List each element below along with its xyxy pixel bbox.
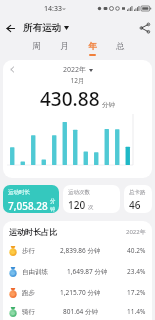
button[interactable]: 所有运动 bbox=[23, 22, 69, 34]
button[interactable]: 运动时长 bbox=[3, 185, 59, 213]
button[interactable]: 运动次数 bbox=[63, 185, 120, 213]
staticText: 46 bbox=[129, 198, 141, 212]
staticText: 120 bbox=[68, 198, 86, 212]
staticText: 11.4% bbox=[127, 307, 146, 316]
button[interactable]: 总 bbox=[106, 41, 134, 56]
button[interactable]: 自由训练 bbox=[3, 261, 152, 282]
staticText: 运动时长 bbox=[8, 189, 30, 196]
staticText: 2,839.86 分钟 bbox=[60, 246, 101, 255]
button[interactable]: Back bbox=[0, 18, 20, 38]
staticText: 骑行 bbox=[22, 308, 35, 316]
staticText: 所有运动 bbox=[23, 22, 61, 34]
staticText: 1,215.70 分钟 bbox=[60, 288, 101, 297]
staticText: 7,058.28 bbox=[8, 199, 48, 213]
staticText: 801.64 分钟 bbox=[63, 307, 99, 316]
staticText: 跑步 bbox=[22, 289, 35, 297]
staticText: 周 bbox=[32, 41, 41, 52]
button[interactable]: 年 bbox=[78, 41, 106, 56]
staticText: 2022年 bbox=[63, 65, 87, 75]
button[interactable]: Previous bbox=[7, 64, 18, 75]
staticText: 月 bbox=[60, 41, 69, 52]
button[interactable]: Share bbox=[135, 18, 155, 38]
staticText: 430.88 bbox=[40, 86, 100, 112]
staticText: 17.2% bbox=[127, 288, 146, 297]
staticText: 次 bbox=[88, 204, 94, 211]
staticText: 运动时长占比 bbox=[9, 227, 57, 237]
button[interactable]: 周 bbox=[22, 41, 50, 56]
button[interactable]: 2022年 bbox=[63, 65, 93, 75]
button[interactable]: 步行 bbox=[3, 240, 152, 261]
button[interactable]: 跑步 bbox=[3, 282, 152, 303]
staticText: 2022年 bbox=[126, 228, 146, 236]
button[interactable]: 月 bbox=[50, 41, 78, 56]
staticText: 总卡路里 bbox=[129, 189, 149, 196]
staticText: 年 bbox=[88, 41, 97, 52]
button[interactable]: 总卡路里 bbox=[124, 185, 152, 213]
staticText: 12月 bbox=[3, 76, 152, 85]
staticText: 40.2% bbox=[127, 246, 146, 255]
staticText: 1,649.87 分钟 bbox=[67, 267, 108, 276]
staticText: 分钟 bbox=[50, 198, 56, 212]
staticText: 运动次数 bbox=[68, 189, 90, 196]
staticText: 总 bbox=[116, 41, 125, 52]
staticText: 14:33 bbox=[44, 4, 62, 14]
staticText: 分钟 bbox=[102, 101, 115, 109]
staticText: 自由训练 bbox=[22, 268, 48, 276]
button[interactable]: 骑行 bbox=[3, 303, 152, 320]
staticText: 23.4% bbox=[127, 267, 146, 276]
staticText: 步行 bbox=[22, 247, 35, 255]
